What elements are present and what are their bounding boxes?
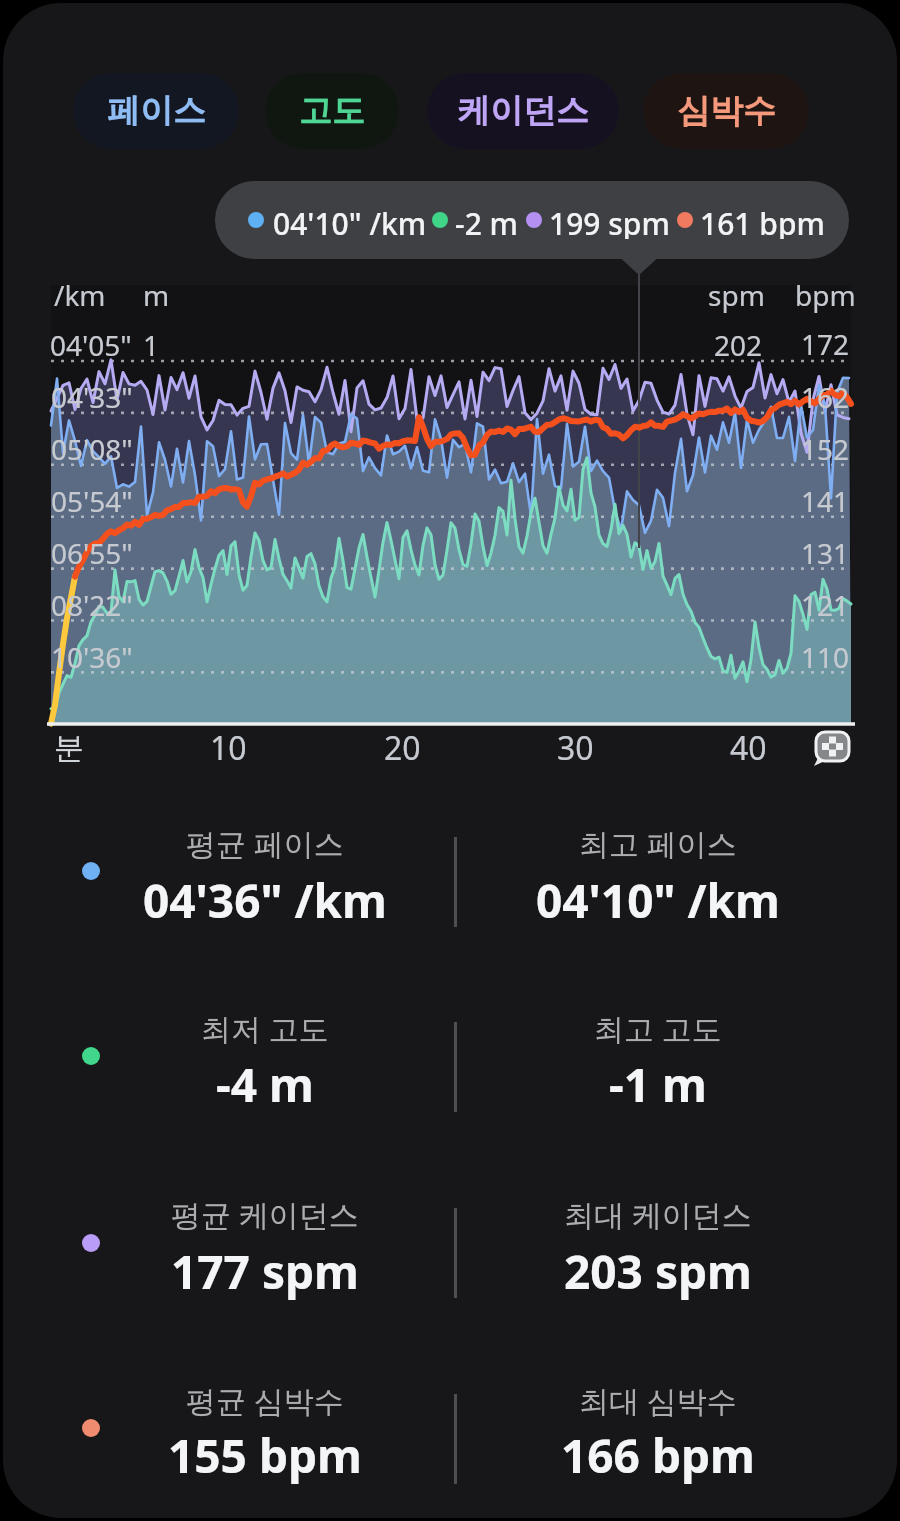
staticText: bpm xyxy=(795,276,856,314)
staticText: 202 xyxy=(714,326,763,364)
staticText: 40 xyxy=(730,726,767,770)
staticText: 121 xyxy=(801,586,850,624)
staticText: 05'54" xyxy=(51,482,133,520)
staticText: -4 m xyxy=(216,1053,314,1116)
staticText: 172 xyxy=(801,325,850,363)
staticText: 최고 페이스 xyxy=(579,823,737,864)
staticText: 161 bpm xyxy=(700,203,825,239)
staticText: 08'22" xyxy=(51,586,133,624)
staticText: 1 xyxy=(143,326,160,364)
staticText: 110 xyxy=(801,638,850,676)
staticText: -1 m xyxy=(609,1053,707,1116)
staticText: /km xyxy=(54,276,106,314)
staticText: 04'10" /km xyxy=(273,203,427,239)
staticText: 최대 심박수 xyxy=(579,1380,737,1421)
staticText: 20 xyxy=(384,726,421,770)
staticText: 04'10" /km xyxy=(536,869,780,932)
staticText: 최저 고도 xyxy=(201,1008,329,1049)
staticText: 10 xyxy=(210,726,247,770)
button[interactable]: 페이스 xyxy=(73,73,239,149)
staticText: 06'55" xyxy=(51,534,133,572)
staticText: 평균 케이던스 xyxy=(171,1194,359,1235)
staticText: 152 xyxy=(801,430,850,468)
staticText: 심박수 xyxy=(677,90,776,132)
staticText: 131 xyxy=(801,534,850,572)
button[interactable]: 심박수 xyxy=(643,73,809,149)
staticText: 162 xyxy=(801,378,850,416)
staticText: m xyxy=(143,276,170,314)
staticText: 10'36" xyxy=(51,638,133,676)
staticText: 166 bpm xyxy=(561,1424,755,1487)
staticText: 분 xyxy=(54,729,84,767)
staticText: -2 m xyxy=(455,203,518,239)
staticText: 04'05" xyxy=(50,326,132,364)
staticText: 케이던스 xyxy=(457,90,589,132)
staticText: 평균 심박수 xyxy=(186,1380,344,1421)
button[interactable]: 고도 xyxy=(265,73,399,149)
staticText: 05'08" xyxy=(51,430,133,468)
staticText: 04'36" /km xyxy=(143,869,387,932)
staticText: 141 xyxy=(801,482,850,520)
staticText: 177 spm xyxy=(171,1240,359,1303)
staticText: spm xyxy=(708,276,765,314)
button[interactable]: 케이던스 xyxy=(427,73,619,149)
staticText: 최대 케이던스 xyxy=(564,1194,752,1235)
staticText: 203 spm xyxy=(564,1240,752,1303)
staticText: 고도 xyxy=(299,90,365,132)
staticText: 04'33" xyxy=(51,378,133,416)
staticText: 평균 페이스 xyxy=(186,823,344,864)
staticText: 155 bpm xyxy=(168,1424,362,1487)
staticText: 최고 고도 xyxy=(594,1008,722,1049)
staticText: 30 xyxy=(557,726,594,770)
staticText: 199 spm xyxy=(549,203,670,239)
staticText: 페이스 xyxy=(107,90,206,132)
